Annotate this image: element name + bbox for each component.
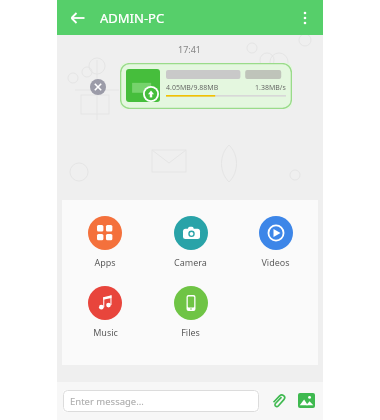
staticText: Enter message... bbox=[70, 395, 144, 408]
button[interactable]: Attach file bbox=[267, 390, 289, 412]
staticText: Files bbox=[181, 326, 200, 338]
staticText: Music bbox=[93, 326, 118, 338]
staticText: Camera bbox=[174, 256, 207, 268]
button[interactable]: Files bbox=[148, 284, 233, 340]
button[interactable]: Cancel transfer bbox=[90, 79, 106, 95]
button[interactable]: 4.05MB/9.88MB bbox=[120, 63, 292, 109]
staticText: ADMIN-PC bbox=[100, 9, 165, 27]
staticText: 1.38MB/s bbox=[255, 83, 286, 93]
staticText: 17:41 bbox=[178, 43, 202, 55]
button[interactable]: Camera bbox=[148, 214, 233, 270]
button[interactable]: Enter message... bbox=[63, 390, 259, 412]
staticText: Apps bbox=[94, 256, 116, 268]
button[interactable]: More options bbox=[293, 6, 317, 30]
button[interactable]: Back bbox=[65, 5, 91, 31]
button[interactable]: Apps bbox=[62, 214, 148, 270]
staticText: 4.05MB/9.88MB bbox=[166, 83, 219, 93]
button[interactable]: Videos bbox=[233, 214, 318, 270]
button[interactable]: Music bbox=[62, 284, 148, 340]
staticText: Videos bbox=[261, 256, 290, 268]
button[interactable]: Send image bbox=[295, 390, 317, 412]
